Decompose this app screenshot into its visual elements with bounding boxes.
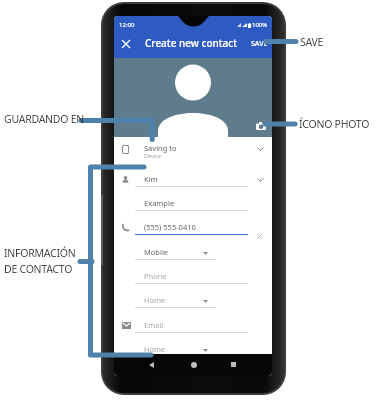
staticText: DE CONTACTO: [4, 262, 73, 276]
button[interactable]: Home: [114, 342, 272, 364]
button[interactable]: Back: [142, 354, 160, 375]
button[interactable]: Add photo: [255, 120, 267, 132]
button[interactable]: Recents: [224, 354, 242, 375]
staticText: ÍCONO PHOTO: [299, 117, 370, 131]
button[interactable]: Close: [116, 34, 135, 53]
staticText: Example: [144, 198, 175, 208]
button[interactable]: Example: [114, 196, 272, 218]
staticText: SAVE: [300, 35, 324, 49]
button[interactable]: Home: [114, 293, 272, 315]
staticText: 100%: [252, 21, 268, 29]
staticText: SAVE: [251, 39, 268, 49]
button[interactable]: Email: [114, 318, 272, 340]
staticText: Saving to: [144, 143, 177, 153]
staticText: Email: [144, 320, 164, 330]
button[interactable]: SAVE: [247, 35, 272, 53]
staticText: 12:00: [119, 21, 135, 29]
staticText: Phone: [144, 271, 167, 281]
staticText: Mobile: [144, 247, 169, 257]
staticText: INFORMACIÓN: [4, 246, 76, 260]
button[interactable]: Mobile: [114, 245, 272, 267]
button[interactable]: Saving to: [114, 141, 272, 161]
staticText: GUARDANDO EN: [4, 112, 85, 126]
staticText: Create new contact: [145, 36, 238, 50]
staticText: Home: [144, 295, 166, 305]
staticText: (555) 555-0410: [144, 222, 196, 232]
button[interactable]: Home: [185, 354, 203, 375]
staticText: Kim: [144, 174, 158, 184]
staticText: Device: [144, 152, 161, 159]
button[interactable]: Kim: [114, 172, 272, 194]
staticText: Home: [144, 344, 166, 354]
button[interactable]: Phone: [114, 269, 272, 291]
button[interactable]: (555) 555-0410: [114, 220, 272, 242]
